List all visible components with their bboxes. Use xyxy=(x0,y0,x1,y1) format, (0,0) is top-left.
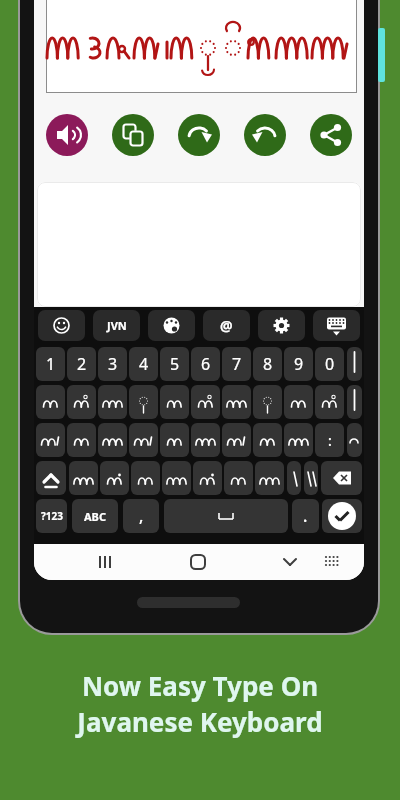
button[interactable] xyxy=(310,114,352,156)
button[interactable] xyxy=(244,114,286,156)
button[interactable] xyxy=(255,461,284,495)
staticText: , xyxy=(139,505,144,527)
button[interactable] xyxy=(69,461,98,495)
button[interactable] xyxy=(36,461,66,495)
button[interactable] xyxy=(160,385,189,419)
button[interactable] xyxy=(347,423,362,457)
button[interactable] xyxy=(224,461,253,495)
button[interactable] xyxy=(321,461,362,495)
staticText: 5 xyxy=(170,353,180,375)
staticText: ABC xyxy=(84,509,106,524)
button[interactable] xyxy=(222,385,251,419)
button[interactable] xyxy=(38,310,85,341)
button[interactable]: 3 xyxy=(98,347,127,381)
button[interactable] xyxy=(67,423,96,457)
staticText: @ xyxy=(220,316,233,335)
button[interactable]: 5 xyxy=(160,347,189,381)
button[interactable]: 6 xyxy=(191,347,220,381)
button[interactable]: , xyxy=(123,499,159,533)
button[interactable] xyxy=(36,423,65,457)
button[interactable] xyxy=(304,461,318,495)
button[interactable]: ?123 xyxy=(36,499,67,533)
staticText: 4 xyxy=(139,353,149,375)
button[interactable] xyxy=(284,423,313,457)
staticText: . xyxy=(303,505,308,527)
button[interactable]: 1 xyxy=(36,347,65,381)
button[interactable] xyxy=(284,385,313,419)
button[interactable]: JVN xyxy=(93,310,140,341)
button[interactable]: : xyxy=(315,423,344,457)
button[interactable] xyxy=(67,385,96,419)
button[interactable] xyxy=(100,461,129,495)
staticText: 1 xyxy=(46,353,56,375)
button[interactable] xyxy=(148,310,195,341)
button[interactable] xyxy=(98,385,127,419)
button[interactable] xyxy=(129,423,158,457)
staticText: 0 xyxy=(325,353,335,375)
button[interactable] xyxy=(276,548,304,576)
staticText: 7 xyxy=(232,353,242,375)
button[interactable] xyxy=(222,423,251,457)
staticText: : xyxy=(328,431,332,450)
button[interactable] xyxy=(318,548,346,576)
staticText: 8 xyxy=(263,353,273,375)
button[interactable]: 8 xyxy=(253,347,282,381)
button[interactable]: 4 xyxy=(129,347,158,381)
button[interactable] xyxy=(253,385,282,419)
staticText: Now Easy Type On Javanese Keyboard xyxy=(0,668,400,740)
button[interactable] xyxy=(162,461,191,495)
button[interactable]: @ xyxy=(203,310,250,341)
button[interactable]: . xyxy=(292,499,319,533)
button[interactable] xyxy=(287,461,301,495)
staticText: 9 xyxy=(294,353,304,375)
button[interactable] xyxy=(164,499,288,533)
button[interactable] xyxy=(160,423,189,457)
button[interactable] xyxy=(36,385,65,419)
button[interactable] xyxy=(193,461,222,495)
button[interactable]: 0 xyxy=(315,347,344,381)
button[interactable] xyxy=(46,114,88,156)
button[interactable]: ABC xyxy=(72,499,118,533)
button[interactable] xyxy=(184,548,212,576)
button[interactable] xyxy=(178,114,220,156)
button[interactable] xyxy=(258,310,305,341)
staticText: 6 xyxy=(201,353,211,375)
button[interactable]: 9 xyxy=(284,347,313,381)
button[interactable]: 7 xyxy=(222,347,251,381)
button[interactable] xyxy=(253,423,282,457)
button[interactable] xyxy=(191,385,220,419)
staticText: 3 xyxy=(108,353,118,375)
button[interactable] xyxy=(322,499,362,533)
staticText: JVN xyxy=(107,318,127,333)
button[interactable] xyxy=(347,385,362,419)
button[interactable] xyxy=(98,423,127,457)
button[interactable] xyxy=(112,114,154,156)
button[interactable] xyxy=(91,548,119,576)
button[interactable] xyxy=(347,347,362,381)
button[interactable]: 2 xyxy=(67,347,96,381)
staticText: 2 xyxy=(77,353,87,375)
staticText: ?123 xyxy=(41,509,63,523)
button[interactable] xyxy=(313,310,360,341)
button[interactable] xyxy=(131,461,160,495)
button[interactable] xyxy=(315,385,344,419)
button[interactable] xyxy=(129,385,158,419)
button[interactable] xyxy=(191,423,220,457)
